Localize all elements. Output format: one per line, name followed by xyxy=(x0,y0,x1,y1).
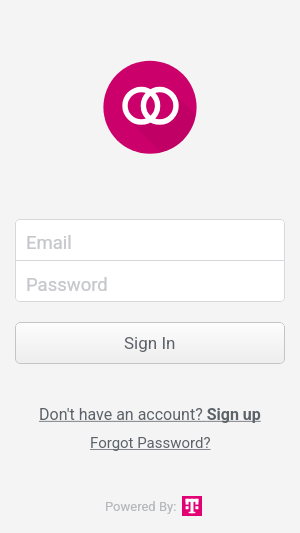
button[interactable]: Don't have an account? Sign up xyxy=(35,404,265,425)
staticText: Email xyxy=(26,232,72,254)
button[interactable]: Sign In xyxy=(15,322,285,364)
staticText: Password xyxy=(26,274,108,296)
staticText: Powered By: xyxy=(105,499,177,514)
button[interactable]: Password xyxy=(15,261,285,302)
staticText: Forgot Password? xyxy=(90,434,211,452)
staticText: Sign In xyxy=(124,333,176,353)
button[interactable]: Email xyxy=(15,219,285,260)
button[interactable]: Forgot Password? xyxy=(86,433,215,453)
staticText: Don't have an account? Sign up xyxy=(39,405,261,424)
